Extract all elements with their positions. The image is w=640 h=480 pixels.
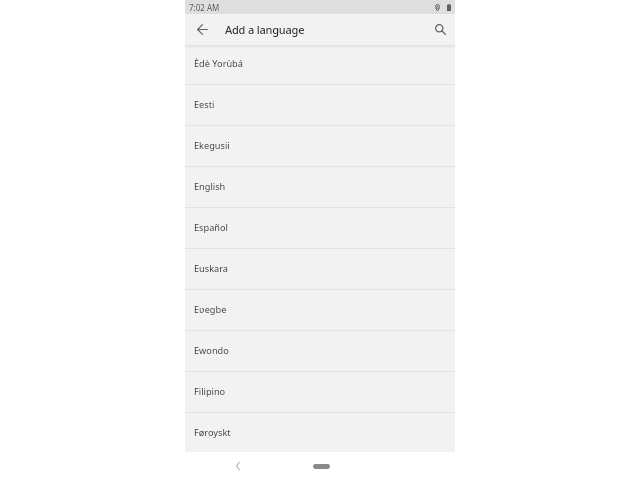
button[interactable]: Eʋegbe xyxy=(185,290,455,331)
button[interactable]: English xyxy=(185,167,455,208)
staticText: Ekegusii xyxy=(194,139,230,152)
button[interactable]: Back xyxy=(229,457,247,475)
staticText: Filipino xyxy=(194,385,226,398)
staticText: Ewondo xyxy=(194,344,229,357)
button[interactable]: Español xyxy=(185,208,455,249)
staticText: Èdè Yorùbá xyxy=(194,57,243,70)
button[interactable]: Ekegusii xyxy=(185,126,455,167)
button[interactable]: Search xyxy=(429,18,451,40)
button[interactable]: Home xyxy=(306,460,336,472)
button[interactable]: Filipino xyxy=(185,372,455,413)
staticText: English xyxy=(194,180,226,193)
staticText: 7:02 AM xyxy=(189,2,220,13)
staticText: Euskara xyxy=(194,262,229,275)
staticText: Føroyskt xyxy=(194,426,231,439)
button[interactable]: Euskara xyxy=(185,249,455,290)
button[interactable]: Èdè Yorùbá xyxy=(185,44,455,85)
staticText: Eesti xyxy=(194,98,215,111)
staticText: Add a language xyxy=(225,22,305,37)
button[interactable]: Føroyskt xyxy=(185,413,455,453)
staticText: Español xyxy=(194,221,228,234)
button[interactable]: Navigate up xyxy=(191,18,213,40)
button[interactable]: Ewondo xyxy=(185,331,455,372)
button[interactable]: Eesti xyxy=(185,85,455,126)
staticText: Eʋegbe xyxy=(194,303,227,316)
